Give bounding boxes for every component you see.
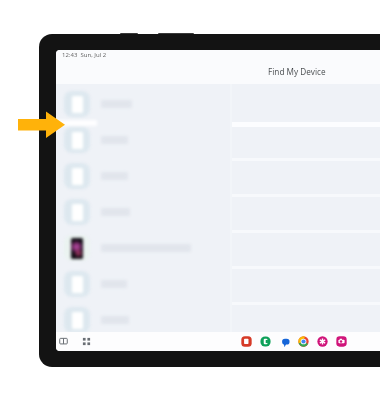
button[interactable]: All apps bbox=[82, 337, 91, 346]
button[interactable]: App 6 bbox=[336, 336, 347, 347]
button[interactable] bbox=[56, 266, 230, 302]
button[interactable] bbox=[56, 302, 230, 338]
staticText: 12:43 Sun, Jul 2 bbox=[62, 51, 107, 59]
button[interactable]: App 2 bbox=[260, 336, 271, 347]
button[interactable]: Recent apps bbox=[59, 337, 68, 346]
button[interactable]: App 3 bbox=[279, 336, 290, 347]
button[interactable] bbox=[56, 194, 230, 230]
button[interactable]: App 1 bbox=[241, 336, 252, 347]
staticText: Find My Device bbox=[268, 66, 326, 77]
button[interactable] bbox=[56, 158, 230, 194]
button[interactable]: App 4 bbox=[298, 336, 309, 347]
button[interactable] bbox=[56, 86, 230, 122]
button[interactable] bbox=[56, 230, 230, 266]
button[interactable] bbox=[56, 122, 230, 158]
button[interactable]: App 5 bbox=[317, 336, 328, 347]
